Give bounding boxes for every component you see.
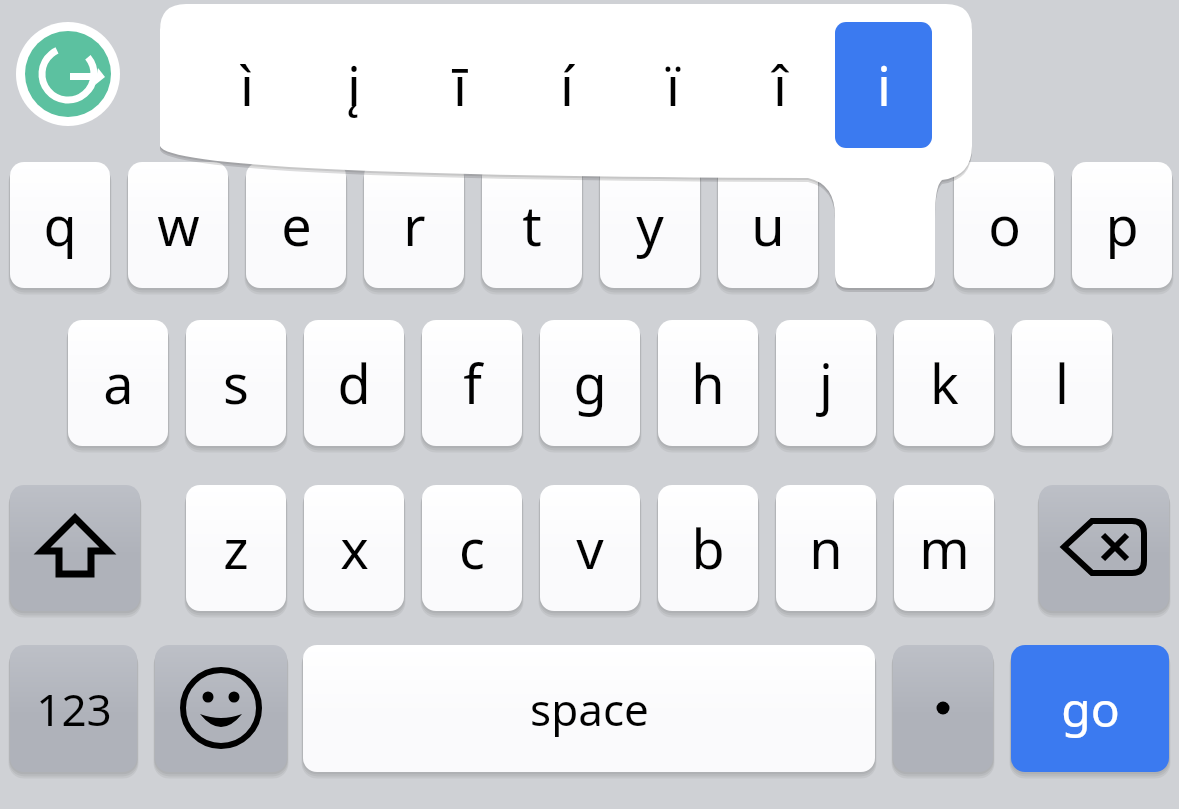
staticText: q bbox=[43, 188, 77, 262]
staticText: ī bbox=[453, 48, 467, 122]
button[interactable] bbox=[600, 162, 700, 288]
button[interactable] bbox=[776, 485, 876, 611]
staticText: go bbox=[1061, 676, 1120, 741]
staticText: i bbox=[877, 48, 891, 122]
button[interactable]: Period bbox=[893, 645, 993, 772]
button[interactable]: Emoji bbox=[155, 645, 287, 772]
button[interactable] bbox=[658, 485, 758, 611]
staticText: 123 bbox=[36, 679, 112, 739]
button[interactable] bbox=[1011, 645, 1169, 772]
staticText: ì bbox=[240, 48, 254, 122]
button[interactable] bbox=[246, 162, 346, 288]
staticText: î bbox=[773, 48, 787, 122]
staticText: t bbox=[522, 188, 542, 262]
button[interactable]: Backspace bbox=[1039, 485, 1169, 611]
button[interactable] bbox=[718, 162, 818, 288]
button[interactable]: i bbox=[836, 162, 936, 288]
button[interactable] bbox=[658, 320, 758, 446]
staticText: z bbox=[223, 511, 249, 585]
staticText: í bbox=[560, 48, 574, 122]
staticText: m bbox=[919, 511, 970, 585]
button[interactable] bbox=[128, 162, 228, 288]
button[interactable] bbox=[954, 162, 1054, 288]
button[interactable] bbox=[303, 645, 875, 772]
staticText: ï bbox=[666, 48, 680, 122]
button[interactable] bbox=[540, 485, 640, 611]
button[interactable] bbox=[10, 645, 137, 772]
staticText: s bbox=[223, 346, 249, 420]
staticText: y bbox=[636, 188, 664, 262]
button[interactable] bbox=[517, 22, 617, 148]
button[interactable] bbox=[304, 22, 404, 148]
staticText: d bbox=[337, 346, 371, 420]
staticText: h bbox=[691, 346, 725, 420]
button[interactable] bbox=[1012, 320, 1112, 446]
staticText: p bbox=[1105, 188, 1139, 262]
staticText: n bbox=[809, 511, 843, 585]
staticText: f bbox=[463, 346, 482, 420]
staticText: a bbox=[103, 346, 134, 420]
button[interactable] bbox=[186, 485, 286, 611]
staticText: k bbox=[930, 346, 959, 420]
staticText: e bbox=[281, 188, 312, 262]
staticText: x bbox=[340, 511, 369, 585]
button[interactable] bbox=[894, 320, 994, 446]
staticText: b bbox=[691, 511, 725, 585]
button[interactable] bbox=[422, 485, 522, 611]
button[interactable] bbox=[776, 320, 876, 446]
staticText: u bbox=[751, 188, 785, 262]
staticText: w bbox=[157, 188, 200, 262]
button[interactable] bbox=[482, 162, 582, 288]
button[interactable] bbox=[1072, 162, 1172, 288]
staticText: l bbox=[1055, 346, 1069, 420]
button[interactable]: Grammarly bbox=[16, 22, 120, 126]
button[interactable]: Shift bbox=[10, 485, 140, 611]
button[interactable] bbox=[623, 22, 723, 148]
button[interactable] bbox=[197, 22, 297, 148]
button[interactable] bbox=[364, 162, 464, 288]
button[interactable] bbox=[422, 320, 522, 446]
staticText: v bbox=[576, 511, 604, 585]
staticText: c bbox=[459, 511, 485, 585]
button[interactable] bbox=[894, 485, 994, 611]
button[interactable] bbox=[835, 22, 932, 148]
button[interactable] bbox=[730, 22, 830, 148]
staticText: j bbox=[819, 346, 833, 420]
button[interactable] bbox=[304, 320, 404, 446]
staticText: į bbox=[347, 48, 361, 122]
button[interactable] bbox=[410, 22, 510, 148]
staticText: space bbox=[530, 679, 649, 739]
staticText: g bbox=[573, 346, 607, 420]
button[interactable] bbox=[540, 320, 640, 446]
staticText: r bbox=[403, 188, 426, 262]
button[interactable] bbox=[304, 485, 404, 611]
button[interactable] bbox=[68, 320, 168, 446]
staticText: o bbox=[988, 188, 1021, 262]
button[interactable] bbox=[10, 162, 110, 288]
button[interactable] bbox=[186, 320, 286, 446]
